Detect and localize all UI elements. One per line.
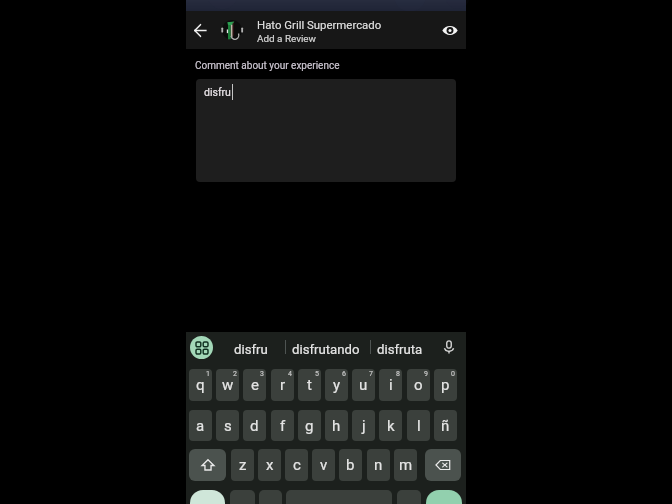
button[interactable]: v (312, 449, 335, 481)
button[interactable]: h (325, 410, 348, 441)
button[interactable]: o (407, 369, 430, 401)
staticText: 4 (288, 370, 292, 378)
button[interactable]: e (243, 369, 266, 401)
button[interactable]: r (271, 369, 294, 401)
button[interactable]: i (379, 369, 402, 401)
staticText: i (389, 376, 393, 394)
staticText: y (333, 376, 341, 394)
staticText: e (251, 376, 259, 394)
button[interactable]: Backspace (425, 449, 461, 481)
staticText: 7 (369, 370, 373, 378)
staticText: m (399, 456, 413, 474)
staticText: Comment about your experience (195, 60, 340, 72)
button[interactable]: disfru (213, 332, 288, 369)
staticText: t (307, 376, 312, 394)
button[interactable]: b (339, 449, 362, 481)
staticText: disfru (234, 342, 268, 357)
staticText: ñ (441, 417, 450, 435)
button[interactable]: f (271, 410, 294, 441)
staticText: n (374, 456, 383, 474)
staticText: disfrutando (292, 342, 360, 357)
button[interactable]: y (325, 369, 348, 401)
button[interactable]: u (352, 369, 375, 401)
button[interactable]: x (258, 449, 281, 481)
staticText: z (239, 456, 247, 474)
staticText: v (320, 456, 328, 474)
staticText: a (196, 417, 205, 435)
staticText: p (441, 376, 450, 394)
staticText: disfruta (377, 342, 423, 357)
staticText: 1 (206, 370, 210, 378)
staticText: o (414, 376, 423, 394)
staticText: f (280, 417, 286, 435)
button[interactable]: disfrutando (288, 332, 363, 369)
staticText: s (224, 417, 232, 435)
button[interactable]: d (243, 410, 266, 441)
staticText: k (387, 417, 395, 435)
button[interactable]: p (434, 369, 457, 401)
button[interactable]: Emoji (259, 490, 282, 504)
button[interactable]: t (298, 369, 321, 401)
staticText: b (346, 456, 355, 474)
button[interactable]: Enter (426, 490, 462, 504)
button[interactable]: j (352, 410, 375, 441)
staticText: h (332, 417, 341, 435)
staticText: 5 (315, 370, 319, 378)
button[interactable]: l (407, 410, 430, 441)
staticText: q (196, 376, 205, 394)
staticText: 8 (396, 370, 400, 378)
staticText: 9 (424, 370, 428, 378)
button[interactable]: q (189, 369, 212, 401)
staticText: 6 (342, 370, 346, 378)
button[interactable]: c (285, 449, 308, 481)
button[interactable]: Keyboard menu (190, 336, 213, 359)
staticText: Add a Review (257, 33, 317, 45)
button[interactable]: n (367, 449, 390, 481)
button[interactable]: Back (186, 11, 214, 49)
button[interactable]: Shift (189, 449, 226, 481)
button[interactable]: disfruta (362, 332, 437, 369)
button[interactable]: Comma (230, 490, 255, 504)
button[interactable]: ñ (434, 410, 457, 441)
button[interactable]: a (189, 410, 212, 441)
button[interactable]: m (394, 449, 417, 481)
button[interactable]: disfru (196, 79, 456, 182)
staticText: Hato Grill Supermercado (257, 18, 382, 31)
staticText: g (305, 417, 314, 435)
staticText: x (266, 456, 274, 474)
staticText: j (362, 417, 366, 435)
button[interactable]: Period (397, 490, 421, 504)
staticText: c (293, 456, 301, 474)
staticText: l (417, 417, 421, 435)
button[interactable]: Preview (434, 11, 466, 49)
button[interactable]: z (231, 449, 254, 481)
button[interactable]: k (379, 410, 402, 441)
staticText: 0 (451, 370, 455, 378)
staticText: w (222, 376, 234, 394)
button[interactable]: g (298, 410, 321, 441)
staticText: disfru (204, 86, 231, 98)
staticText: d (250, 417, 259, 435)
staticText: 3 (260, 370, 264, 378)
button[interactable]: ?123 (190, 490, 225, 504)
button[interactable]: s (216, 410, 239, 441)
button[interactable]: Voice input (437, 335, 461, 359)
button[interactable]: w (216, 369, 239, 401)
staticText: 2 (233, 370, 237, 378)
staticText: u (359, 376, 368, 394)
staticText: r (280, 376, 286, 394)
